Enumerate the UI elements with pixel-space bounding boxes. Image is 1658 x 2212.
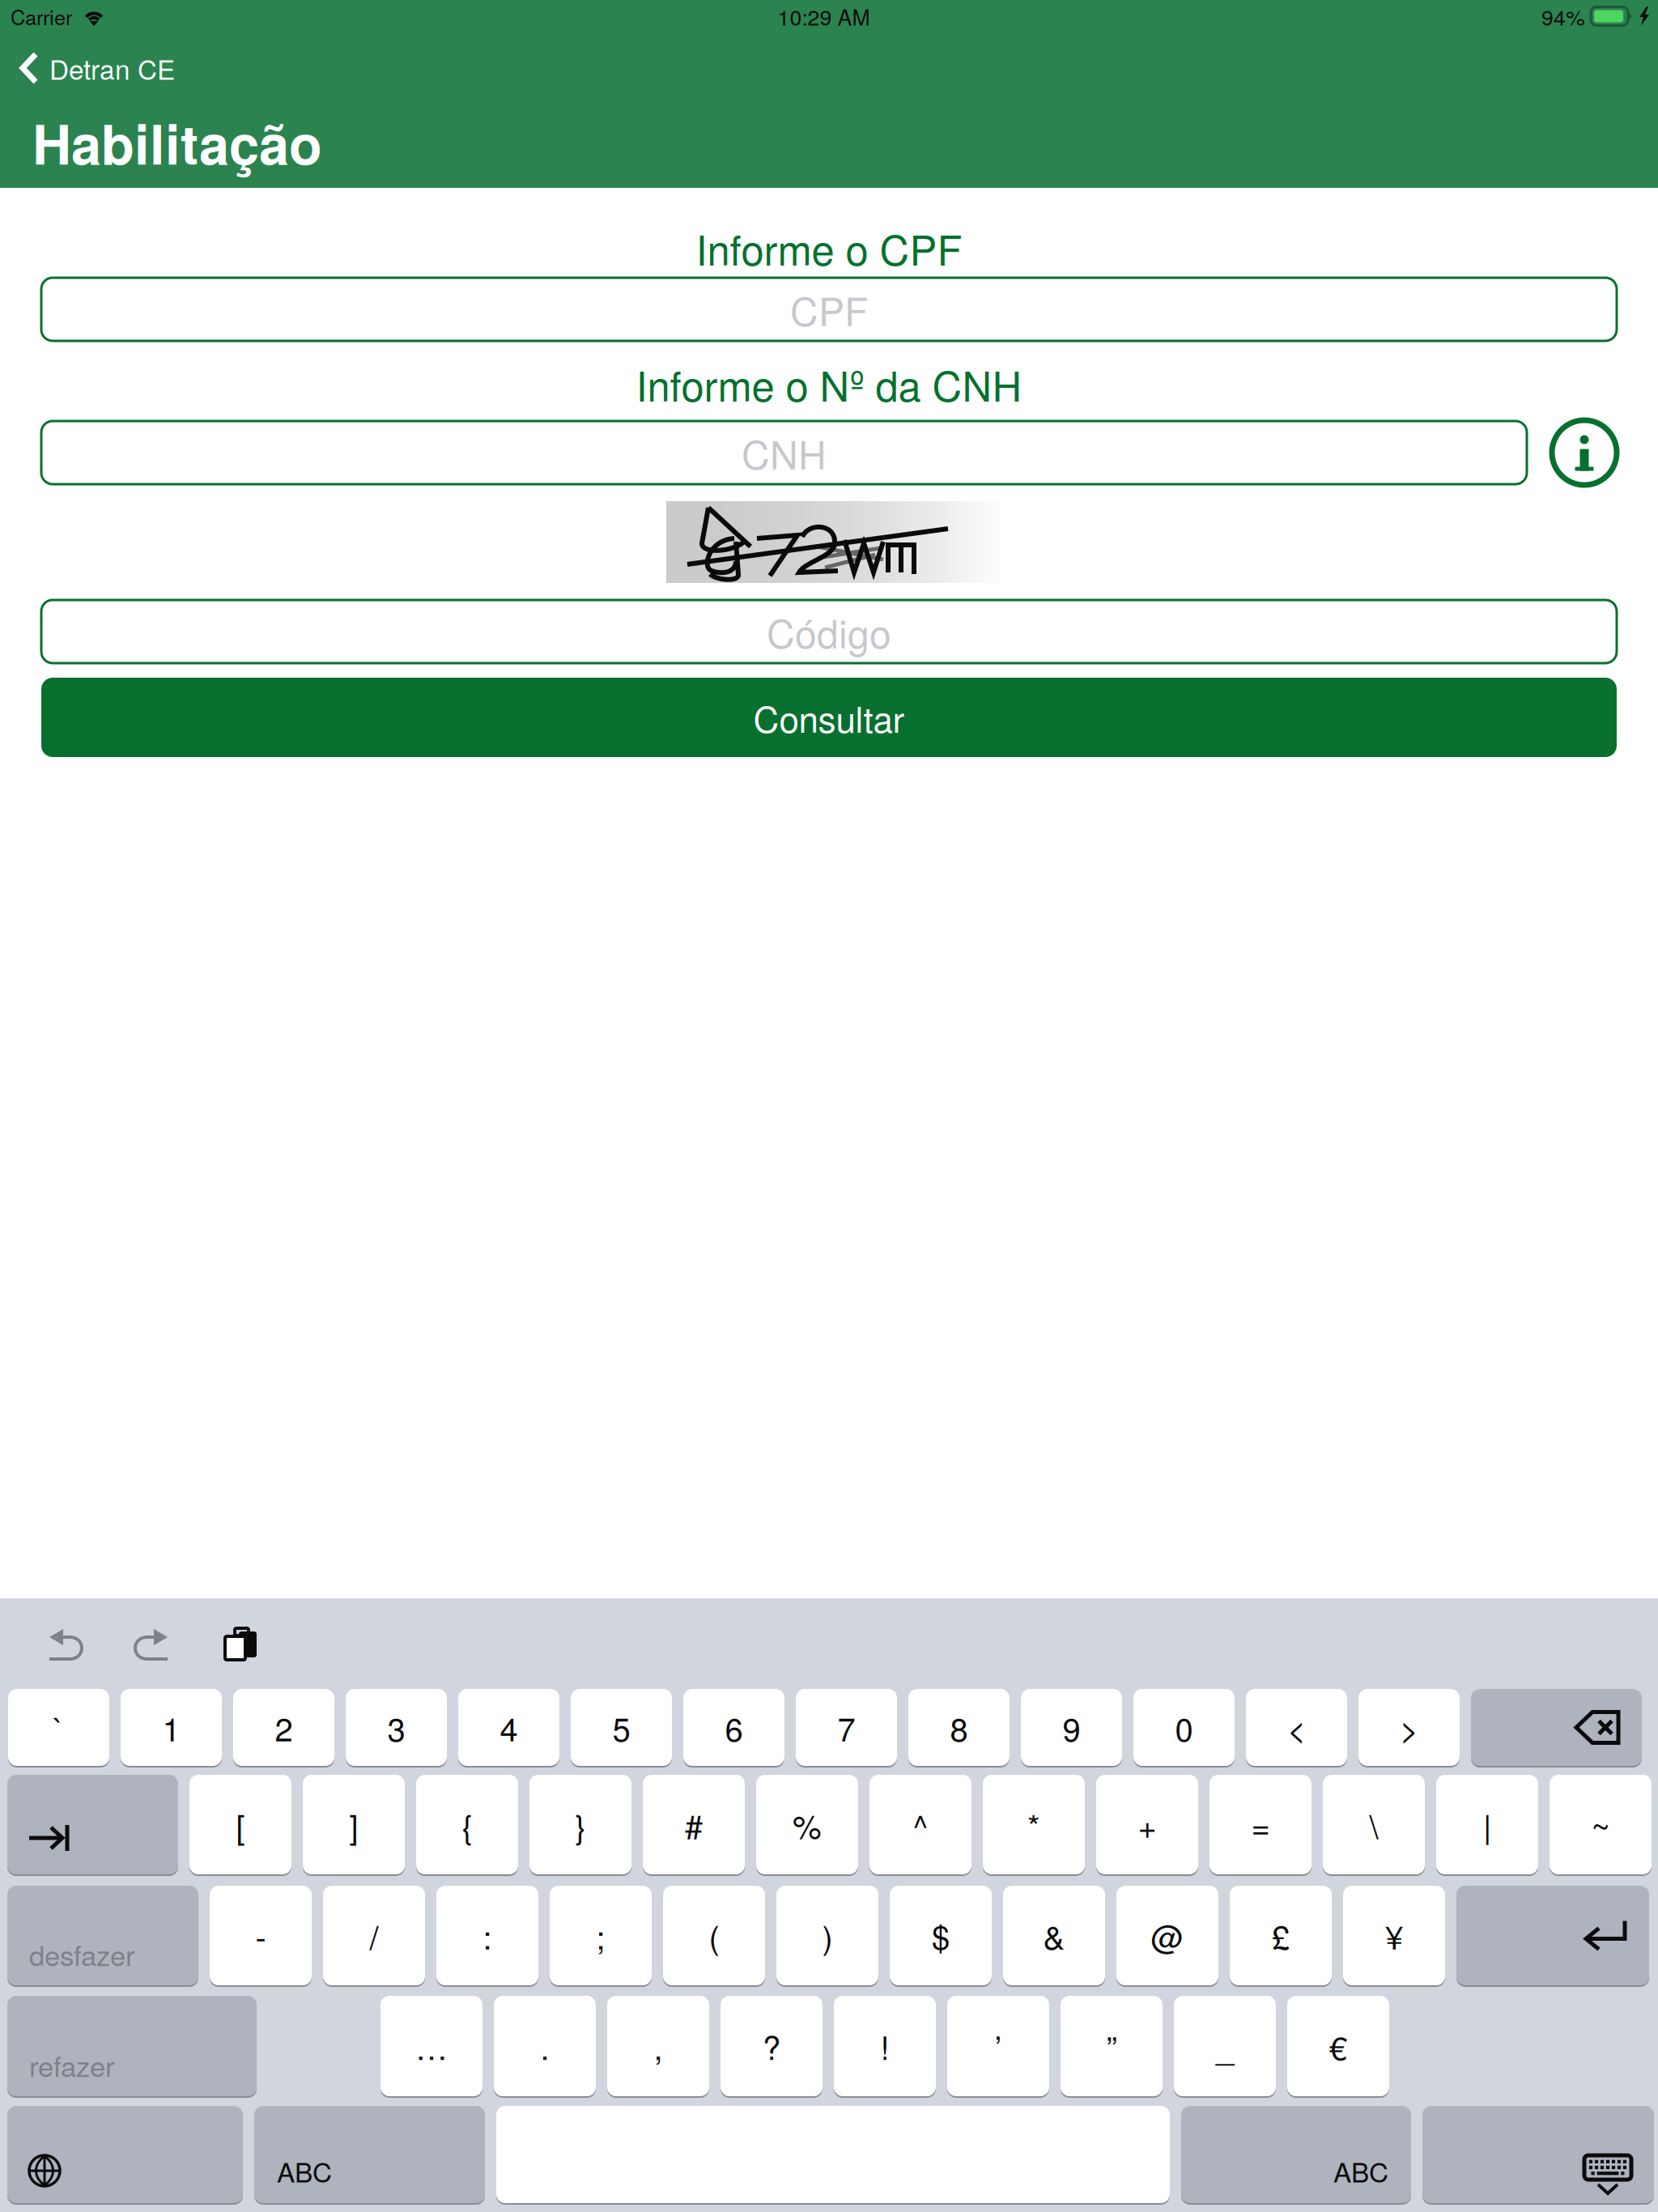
button[interactable]: ` bbox=[8, 1689, 109, 1766]
button[interactable]: ¥ bbox=[1343, 1886, 1445, 1985]
staticText: { bbox=[462, 1801, 472, 1848]
staticText: 4 bbox=[500, 1704, 518, 1751]
button[interactable]: £ bbox=[1230, 1886, 1332, 1985]
button[interactable] bbox=[1456, 1886, 1649, 1985]
button[interactable]: $ bbox=[890, 1886, 992, 1985]
button[interactable]: 4 bbox=[458, 1689, 559, 1766]
button[interactable]: 0 bbox=[1133, 1689, 1235, 1766]
staticText: ¥ bbox=[1385, 1912, 1403, 1959]
button[interactable]: , bbox=[607, 1996, 709, 2096]
button[interactable]: { bbox=[416, 1775, 518, 1874]
staticText: * bbox=[1027, 1801, 1040, 1848]
staticText: £ bbox=[1272, 1912, 1290, 1959]
button[interactable]: ABC bbox=[1181, 2106, 1411, 2203]
staticText: 10:29 AM bbox=[778, 1, 870, 32]
button[interactable]: - bbox=[210, 1886, 312, 1985]
button[interactable]: Detran CE bbox=[0, 32, 202, 104]
button[interactable]: Informações sobre o número da CNH bbox=[1552, 414, 1617, 491]
staticText: ~ bbox=[1591, 1801, 1610, 1848]
button[interactable]: CNH bbox=[41, 421, 1527, 484]
staticText: / bbox=[370, 1912, 378, 1959]
button[interactable]: : bbox=[436, 1886, 538, 1985]
button[interactable]: 5 bbox=[571, 1689, 672, 1766]
button[interactable]: ] bbox=[303, 1775, 405, 1874]
button[interactable]: desfazer bbox=[7, 1886, 198, 1985]
button[interactable]: Consultar bbox=[41, 678, 1617, 757]
staticText: ! bbox=[880, 2023, 889, 2069]
staticText: Informe o Nº da CNH bbox=[636, 354, 1022, 413]
button[interactable]: Desfazer bbox=[24, 1614, 108, 1675]
button[interactable]: = bbox=[1209, 1775, 1312, 1874]
staticText: 6 bbox=[725, 1704, 743, 1751]
staticText: } bbox=[575, 1801, 586, 1848]
button[interactable]: # bbox=[643, 1775, 745, 1874]
staticText: desfazer bbox=[29, 1934, 135, 1974]
button[interactable]: \ bbox=[1323, 1775, 1425, 1874]
button[interactable]: CPF bbox=[41, 278, 1617, 341]
staticText: > bbox=[1400, 1704, 1418, 1751]
button[interactable]: Colar bbox=[193, 1614, 277, 1675]
staticText: ? bbox=[763, 2023, 780, 2069]
button[interactable] bbox=[1422, 2106, 1654, 2203]
button[interactable]: ( bbox=[663, 1886, 765, 1985]
staticText: 0 bbox=[1175, 1704, 1193, 1751]
button[interactable]: ^ bbox=[869, 1775, 971, 1874]
staticText: 9 bbox=[1063, 1704, 1080, 1751]
button[interactable]: ; bbox=[550, 1886, 652, 1985]
button[interactable]: * bbox=[983, 1775, 1085, 1874]
button[interactable] bbox=[7, 2106, 243, 2203]
staticText: CPF bbox=[790, 281, 868, 337]
button[interactable]: ABC bbox=[254, 2106, 485, 2203]
staticText: € bbox=[1329, 2023, 1347, 2069]
button[interactable]: | bbox=[1436, 1775, 1538, 1874]
button[interactable]: 8 bbox=[908, 1689, 1010, 1766]
button[interactable]: > bbox=[1358, 1689, 1460, 1766]
staticText: Detran CE bbox=[49, 49, 175, 87]
staticText: < bbox=[1287, 1704, 1306, 1751]
button[interactable]: 6 bbox=[683, 1689, 784, 1766]
staticText: + bbox=[1138, 1801, 1156, 1848]
button[interactable]: @ bbox=[1116, 1886, 1218, 1985]
button[interactable]: [ bbox=[189, 1775, 291, 1874]
button[interactable]: & bbox=[1003, 1886, 1105, 1985]
staticText: 8 bbox=[950, 1704, 968, 1751]
button[interactable]: refazer bbox=[7, 1996, 257, 2096]
button[interactable]: ) bbox=[776, 1886, 878, 1985]
button[interactable]: 1 bbox=[121, 1689, 222, 1766]
button[interactable]: + bbox=[1096, 1775, 1198, 1874]
button[interactable]: Código bbox=[41, 600, 1617, 663]
button[interactable]: ” bbox=[1061, 1996, 1163, 2096]
button[interactable]: … bbox=[380, 1996, 483, 2096]
button[interactable]: ! bbox=[834, 1996, 936, 2096]
staticText: . bbox=[540, 2023, 549, 2069]
staticText: Código bbox=[767, 604, 891, 659]
staticText: ] bbox=[349, 1801, 358, 1848]
staticText: Consultar bbox=[753, 692, 905, 743]
staticText: ABC bbox=[1333, 2152, 1388, 2190]
button[interactable]: € bbox=[1287, 1996, 1389, 2096]
button[interactable]: ~ bbox=[1550, 1775, 1652, 1874]
button[interactable]: 9 bbox=[1021, 1689, 1122, 1766]
button[interactable]: . bbox=[494, 1996, 596, 2096]
staticText: ABC bbox=[277, 2152, 332, 2190]
button[interactable] bbox=[7, 1775, 178, 1874]
button[interactable]: } bbox=[529, 1775, 631, 1874]
button[interactable]: _ bbox=[1174, 1996, 1276, 2096]
button[interactable] bbox=[1471, 1689, 1642, 1766]
staticText: refazer bbox=[29, 2045, 115, 2085]
button[interactable]: / bbox=[323, 1886, 425, 1985]
button[interactable]: % bbox=[756, 1775, 858, 1874]
staticText: \ bbox=[1369, 1801, 1378, 1848]
button[interactable]: ? bbox=[721, 1996, 823, 2096]
button[interactable]: 3 bbox=[346, 1689, 447, 1766]
staticText: : bbox=[483, 1912, 492, 1959]
staticText: @ bbox=[1151, 1912, 1184, 1959]
button[interactable]: 7 bbox=[796, 1689, 897, 1766]
button[interactable]: Refazer bbox=[108, 1614, 193, 1675]
button[interactable]: ’ bbox=[947, 1996, 1049, 2096]
staticText: ; bbox=[596, 1912, 605, 1959]
button[interactable]: < bbox=[1246, 1689, 1347, 1766]
staticText: Carrier bbox=[11, 2, 72, 31]
button[interactable]: 2 bbox=[233, 1689, 334, 1766]
